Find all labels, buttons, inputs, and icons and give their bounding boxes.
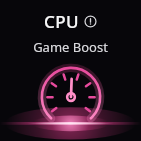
button[interactable]: CPU speed gauge bbox=[0, 66, 141, 130]
button[interactable]: Game Boost bbox=[0, 38, 141, 56]
button[interactable]: Information bbox=[84, 15, 97, 28]
staticText: CPU bbox=[44, 10, 79, 33]
button[interactable]: CPU bbox=[0, 9, 141, 34]
